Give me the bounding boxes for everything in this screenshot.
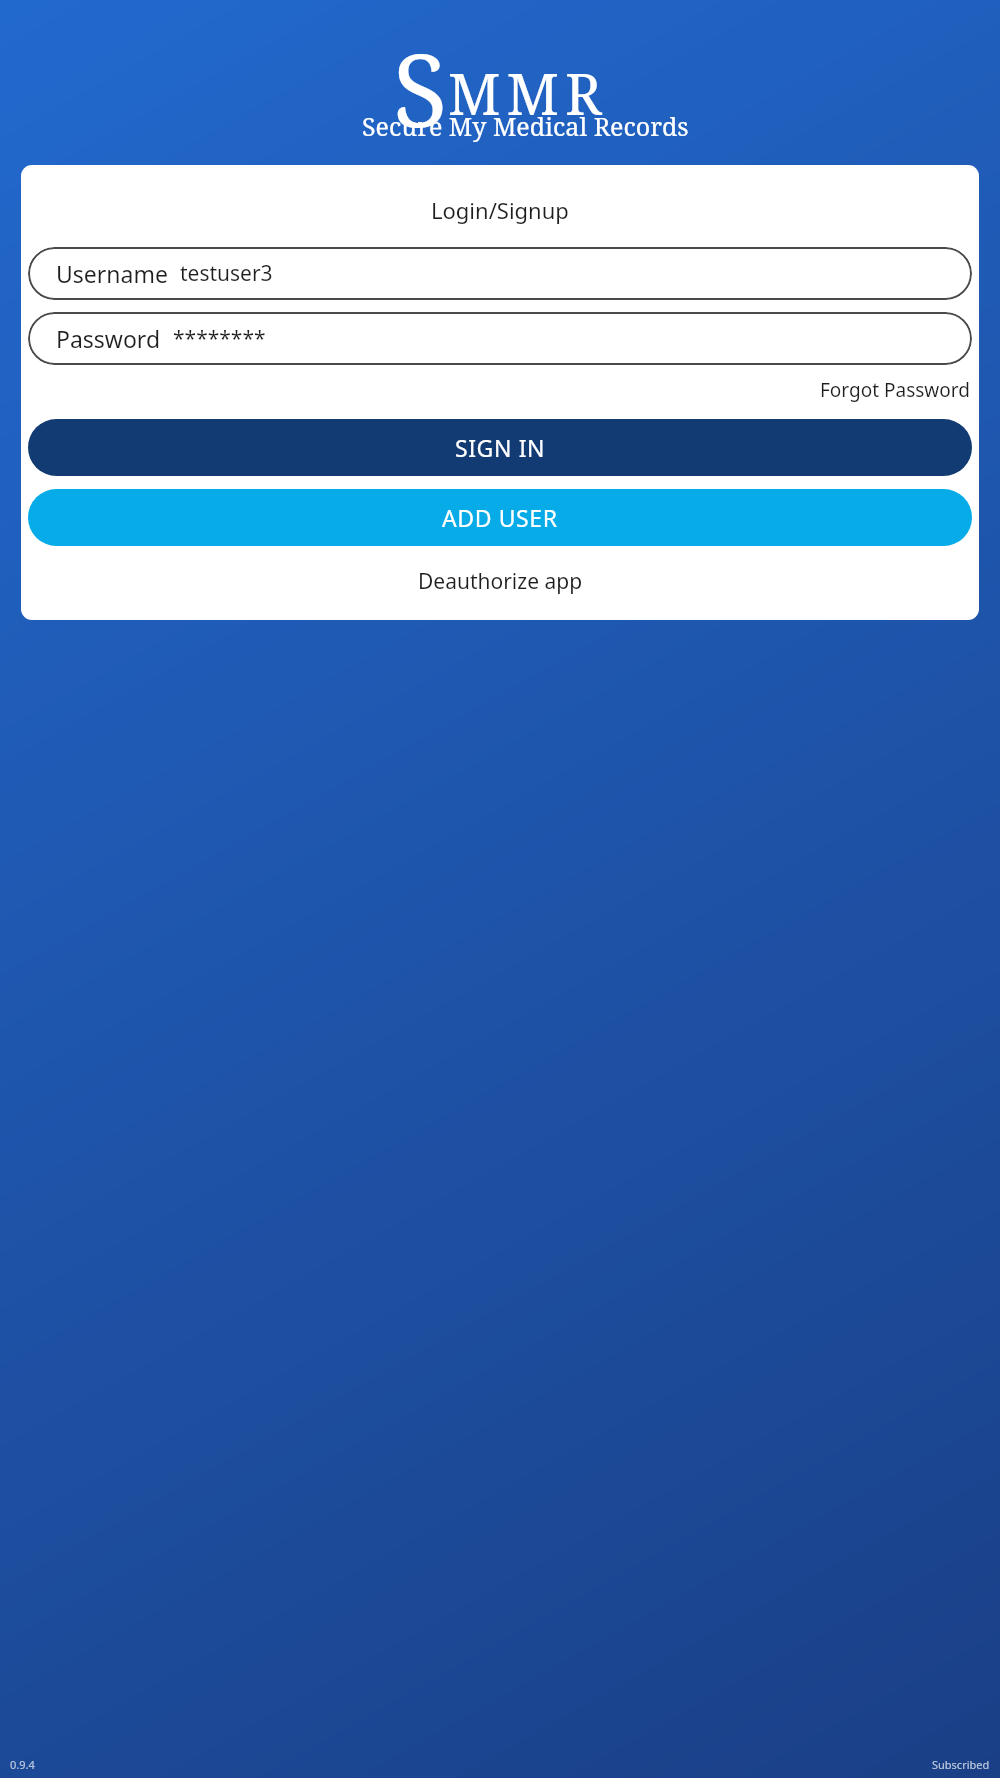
button[interactable]: Deauthorize app — [414, 563, 587, 600]
staticText: Password — [56, 323, 161, 354]
staticText: ******** — [173, 324, 266, 353]
staticText: Login/Signup — [431, 195, 569, 225]
button[interactable]: ADD USER — [28, 489, 972, 546]
staticText: SIGN IN — [455, 432, 546, 463]
staticText: testuser3 — [180, 259, 273, 288]
staticText: MMR — [448, 55, 608, 131]
button[interactable]: Password — [28, 312, 972, 365]
staticText: Secure My Medical Records — [362, 109, 689, 143]
button[interactable]: Username — [28, 247, 972, 300]
staticText: Username — [56, 258, 168, 289]
staticText: ADD USER — [442, 502, 558, 533]
staticText: 0.9.4 — [10, 1757, 35, 1772]
staticText: Subscribed — [932, 1757, 990, 1772]
button[interactable]: Forgot Password — [818, 375, 972, 405]
staticText: S — [393, 20, 448, 143]
button[interactable]: SIGN IN — [28, 419, 972, 476]
